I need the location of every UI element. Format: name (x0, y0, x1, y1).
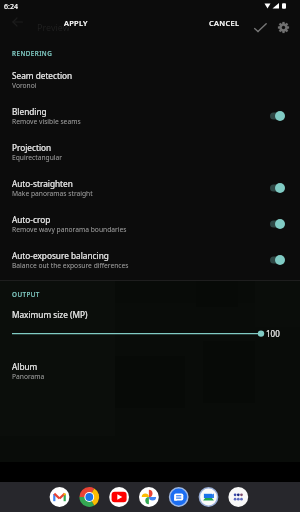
button[interactable]: Auto-crop (0, 206, 300, 242)
staticText: APPLY (64, 18, 88, 28)
staticText: Seam detection (12, 70, 73, 81)
button[interactable]: Settings (276, 20, 291, 35)
staticText: Voronoi (12, 81, 37, 90)
button[interactable]: Projection (0, 134, 300, 170)
staticText: Blending (12, 106, 47, 117)
staticText: Balance out the exposure differences (12, 261, 129, 270)
staticText: Auto-exposure balancing (12, 250, 109, 261)
staticText: Album (12, 361, 38, 372)
staticText: Maximum size (MP) (12, 309, 88, 320)
button[interactable]: Maximum size (MP) (0, 305, 300, 347)
staticText: Preview (37, 21, 70, 33)
staticText: RENDERING (12, 49, 53, 58)
staticText: 6:24 (4, 2, 18, 12)
button[interactable]: Back (10, 14, 26, 30)
button[interactable]: Auto-exposure balancing (0, 242, 300, 278)
staticText: OUTPUT (12, 290, 40, 299)
staticText: 100 (266, 328, 280, 339)
staticText: Panorama (12, 372, 45, 381)
staticText: Auto-crop (12, 214, 51, 225)
staticText: CANCEL (209, 18, 240, 28)
button[interactable]: Done (250, 19, 268, 35)
staticText: Projection (12, 142, 52, 153)
button[interactable]: Auto-straighten (0, 170, 300, 206)
staticText: Auto-straighten (12, 178, 73, 189)
button[interactable]: Album (0, 347, 300, 383)
staticText: Remove visible seams (12, 117, 81, 126)
staticText: Make panoramas straight (12, 189, 93, 198)
button[interactable]: Seam detection (0, 62, 300, 98)
button[interactable]: CANCEL (206, 18, 242, 40)
button[interactable]: Blending (0, 98, 300, 134)
staticText: Remove wavy panorama boundaries (12, 225, 127, 234)
button[interactable]: APPLY (58, 18, 94, 40)
staticText: Equirectangular (12, 153, 63, 162)
